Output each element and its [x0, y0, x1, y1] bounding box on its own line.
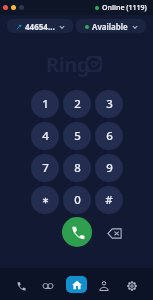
- staticText: 7: [42, 160, 49, 176]
- staticText: 44654…: [25, 21, 55, 32]
- button[interactable]: 7: [31, 154, 59, 182]
- staticText: Available: [92, 21, 128, 32]
- button[interactable]: 3: [95, 90, 123, 118]
- staticText: 0: [74, 192, 81, 208]
- button[interactable]: 9: [95, 154, 123, 182]
- button[interactable]: 6: [95, 122, 123, 150]
- staticText: 5: [74, 128, 81, 144]
- staticText: 9: [106, 160, 113, 176]
- button[interactable]: Backspace: [102, 221, 126, 245]
- button[interactable]: Settings: [118, 272, 146, 296]
- staticText: 6: [106, 128, 113, 144]
- staticText: 3: [106, 96, 113, 112]
- button[interactable]: #: [95, 186, 123, 214]
- staticText: #: [105, 192, 113, 208]
- button[interactable]: 8: [63, 154, 91, 182]
- button[interactable]: Contacts: [90, 272, 118, 296]
- button[interactable]: Call: [62, 217, 92, 247]
- staticText: 8: [74, 160, 81, 176]
- button[interactable]: Voicemail: [34, 272, 62, 296]
- button[interactable]: Home: [62, 272, 90, 296]
- button[interactable]: Calls: [7, 272, 34, 296]
- button[interactable]: 4: [31, 122, 59, 150]
- button[interactable]: Available: [76, 19, 146, 33]
- button[interactable]: [31, 186, 59, 214]
- button[interactable]: 1: [31, 90, 59, 118]
- staticText: 2: [74, 96, 81, 112]
- button[interactable]: 2: [63, 90, 91, 118]
- staticText: 1: [42, 96, 49, 112]
- button[interactable]: 5: [63, 122, 91, 150]
- button[interactable]: 0: [63, 186, 91, 214]
- button[interactable]: 44654…: [7, 19, 73, 33]
- staticText: Ring: [46, 51, 90, 78]
- staticText: Online (1119): [102, 3, 147, 13]
- staticText: 4: [42, 128, 49, 144]
